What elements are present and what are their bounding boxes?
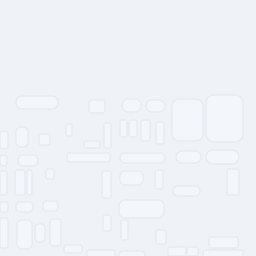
button[interactable]: Item	[141, 120, 150, 141]
button[interactable]: Item	[0, 171, 7, 195]
button[interactable]: Item	[17, 220, 32, 249]
button[interactable]: Item	[16, 202, 33, 212]
button[interactable]: Chip	[176, 151, 201, 163]
button[interactable]: Item	[27, 170, 32, 195]
button[interactable]: Item	[0, 202, 8, 212]
button[interactable]: Filter	[122, 99, 141, 112]
button[interactable]: Chip	[173, 186, 200, 196]
button[interactable]: Item	[104, 123, 111, 148]
button[interactable]: Item	[156, 230, 166, 244]
button[interactable]: Item	[0, 131, 8, 149]
button[interactable]: Item	[227, 169, 239, 195]
button[interactable]: Item	[103, 215, 111, 231]
button[interactable]: Row	[64, 245, 82, 253]
button[interactable]: Chip	[206, 150, 239, 164]
button[interactable]: Item	[121, 220, 128, 240]
button[interactable]: Item	[66, 124, 72, 136]
button[interactable]: Item	[84, 141, 100, 148]
button[interactable]: Sort	[146, 100, 165, 112]
button[interactable]: Item	[35, 224, 45, 242]
button[interactable]: Search	[16, 96, 58, 109]
button[interactable]: Row	[120, 153, 165, 163]
button[interactable]: Item	[0, 155, 7, 166]
button[interactable]: Row	[87, 250, 115, 256]
button[interactable]: Item	[50, 219, 61, 246]
button[interactable]: Row	[67, 153, 110, 162]
button[interactable]: Row	[187, 247, 198, 256]
button[interactable]: Row	[119, 251, 145, 256]
button[interactable]: Item	[16, 127, 28, 147]
button[interactable]: Panel	[119, 200, 164, 218]
button[interactable]: Item	[155, 170, 163, 189]
button[interactable]: Item	[18, 155, 38, 166]
button[interactable]: Item	[15, 170, 25, 195]
button[interactable]: Item	[39, 134, 50, 145]
button[interactable]: Item	[156, 122, 164, 144]
button[interactable]: Row	[168, 247, 186, 256]
button[interactable]: Row	[203, 250, 243, 256]
button[interactable]: Item	[129, 120, 137, 137]
button[interactable]: Item	[102, 171, 111, 198]
button[interactable]: Item	[43, 201, 58, 211]
button[interactable]: Card one	[172, 99, 203, 141]
button[interactable]: Chip	[120, 171, 143, 185]
button[interactable]: Item	[120, 120, 127, 137]
button[interactable]: Item	[46, 169, 54, 179]
button[interactable]: Row	[209, 237, 238, 248]
button[interactable]: Item	[0, 218, 8, 248]
button[interactable]: Tag	[89, 100, 105, 113]
